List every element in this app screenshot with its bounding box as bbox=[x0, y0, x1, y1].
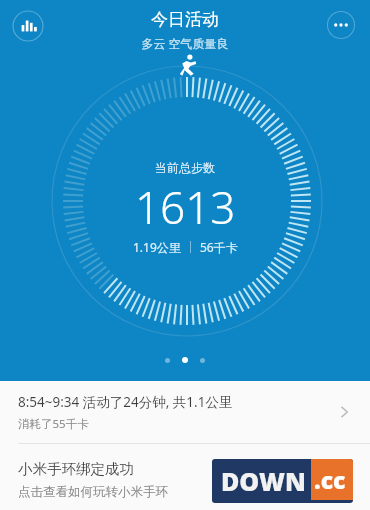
button[interactable]: 小米手环绑定成功 bbox=[0, 444, 370, 510]
staticText: 56千卡 bbox=[200, 239, 238, 255]
staticText: .cc bbox=[314, 464, 346, 495]
staticText: 今日活动 bbox=[151, 9, 219, 30]
button[interactable]: More options bbox=[326, 10, 356, 40]
staticText: 当前总步数 bbox=[155, 160, 215, 175]
staticText: 1613 bbox=[135, 177, 236, 237]
staticText: 点击查看如何玩转小米手环 bbox=[18, 484, 168, 500]
button[interactable]: Statistics bbox=[12, 10, 44, 42]
staticText: 消耗了55千卡 bbox=[18, 416, 89, 432]
staticText: 1.19公里 bbox=[133, 239, 181, 255]
staticText: DOWN bbox=[221, 464, 306, 498]
staticText: 小米手环绑定成功 bbox=[18, 460, 134, 478]
other: Details bbox=[330, 398, 358, 426]
staticText: 8:54~9:34 活动了24分钟, 共1.1公里 bbox=[18, 393, 233, 411]
button[interactable]: 8:54~9:34 活动了24分钟, 共1.1公里 bbox=[0, 381, 370, 443]
staticText: 多云 空气质量良 bbox=[141, 35, 229, 51]
